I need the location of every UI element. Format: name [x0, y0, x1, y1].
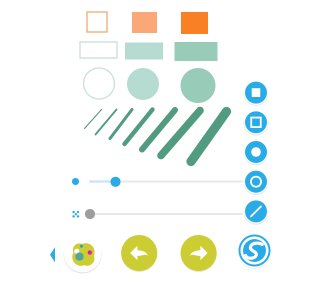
button[interactable]: Line tool [243, 198, 269, 224]
button[interactable]: Outlined square tool [243, 109, 269, 135]
button[interactable]: Light green rectangle [125, 42, 163, 59]
button[interactable]: Stroke width 2 [0, 0, 320, 282]
button[interactable]: Stroke width 6 [0, 0, 320, 282]
button[interactable]: Stroke width 7 [0, 0, 320, 282]
button[interactable]: Green rectangle [174, 42, 217, 61]
button[interactable]: Stroke width 4 [0, 0, 320, 282]
button[interactable]: Green circle [180, 68, 215, 103]
button[interactable]: Filled circle tool [243, 139, 269, 165]
button[interactable]: Outlined circle [83, 68, 114, 99]
button[interactable]: Color palette [63, 233, 103, 273]
button[interactable]: Undo [120, 234, 158, 272]
button[interactable]: Outlined square [87, 12, 107, 32]
button[interactable]: Outlined rectangle [80, 42, 117, 58]
button[interactable]: Light green circle [127, 68, 159, 100]
button[interactable]: Filled square tool [243, 80, 269, 106]
button[interactable]: Stroke width 1 [0, 0, 320, 282]
button[interactable]: Stroke width 3 [0, 0, 320, 282]
button[interactable]: Redo [180, 234, 218, 272]
button[interactable]: Brand menu [236, 232, 272, 268]
button[interactable]: Collapse toolbar [50, 247, 55, 262]
button[interactable]: Outlined circle tool [243, 169, 269, 195]
button[interactable]: Stroke width 5 [0, 0, 320, 282]
